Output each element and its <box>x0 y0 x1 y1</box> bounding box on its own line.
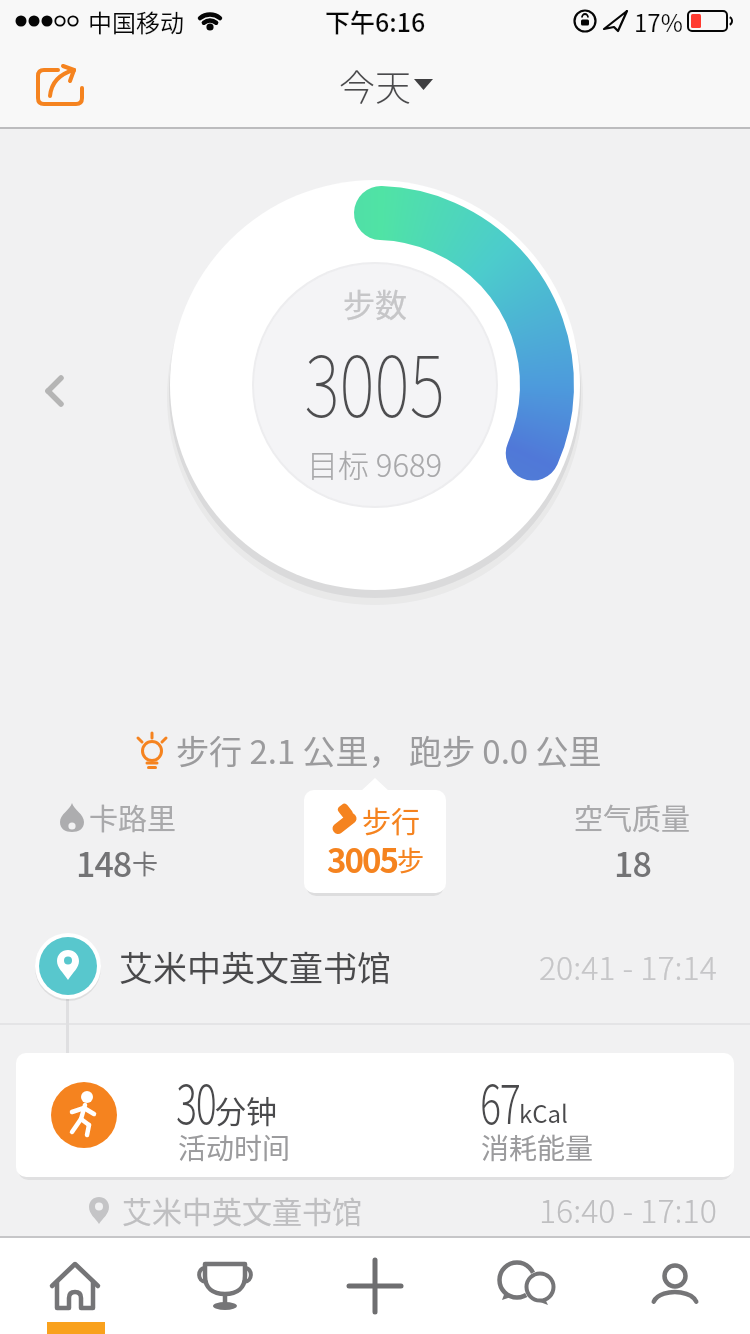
staticText: 卡 <box>132 844 159 882</box>
staticText: 卡路里 <box>89 796 177 838</box>
staticText: 3005 <box>327 835 397 883</box>
button[interactable]: 艾米中英文童书馆 <box>0 930 750 1002</box>
button[interactable]: 步行 <box>304 790 446 893</box>
staticText: 消耗能量 <box>481 1127 594 1168</box>
staticText: 目标 9689 <box>307 441 443 486</box>
staticText: 16:40 - 17:10 <box>539 1186 717 1232</box>
staticText: 3005 <box>305 320 445 442</box>
staticText: 步行 <box>362 799 421 841</box>
button[interactable] <box>600 1238 750 1334</box>
button[interactable]: 30 <box>16 1053 734 1177</box>
staticText: 今天 <box>339 59 412 111</box>
button[interactable] <box>0 1238 150 1334</box>
staticText: 20:41 - 17:14 <box>539 943 717 989</box>
button[interactable]: 艾米中英文童书馆 <box>0 1182 750 1236</box>
staticText: 17% <box>634 4 683 39</box>
staticText: 艾米中英文童书馆 <box>122 1188 362 1231</box>
staticText: 下午6:16 <box>325 3 426 39</box>
staticText: 艾米中英文童书馆 <box>119 942 391 991</box>
staticText: 分钟 <box>215 1087 277 1132</box>
staticText: kCal <box>519 1095 568 1130</box>
staticText: 148 <box>76 838 132 887</box>
staticText: 30 <box>176 1061 215 1139</box>
button[interactable]: 今天 <box>305 42 445 127</box>
staticText: 步数 <box>343 280 408 326</box>
staticText: 空气质量 <box>574 796 691 838</box>
staticText: 中国移动 <box>88 4 184 39</box>
button[interactable] <box>450 1238 600 1334</box>
staticText: 步 <box>397 840 424 879</box>
button[interactable] <box>150 1238 300 1334</box>
button[interactable] <box>300 1238 450 1334</box>
button[interactable] <box>24 52 96 116</box>
staticText: 活动时间 <box>178 1127 291 1168</box>
button[interactable] <box>28 355 88 425</box>
staticText: 67 <box>480 1061 519 1139</box>
staticText: 步行 2.1 公里， 跑步 0.0 公里 <box>176 726 602 774</box>
staticText: 18 <box>614 838 651 887</box>
